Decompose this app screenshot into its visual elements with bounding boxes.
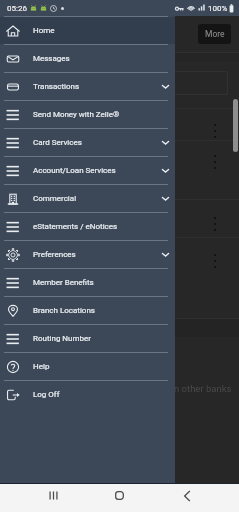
button[interactable]: Send Money with Zelle® bbox=[0, 101, 175, 128]
staticText: Routing Number bbox=[33, 334, 91, 343]
button[interactable]: Home bbox=[0, 17, 175, 44]
button[interactable]: More options bbox=[214, 155, 216, 169]
staticText: Branch Locations bbox=[33, 306, 95, 315]
button[interactable]: More options bbox=[214, 217, 216, 231]
button[interactable]: Recent apps bbox=[40, 482, 67, 509]
staticText: More bbox=[205, 29, 225, 39]
staticText: Member Benefits bbox=[33, 278, 94, 287]
staticText: 100% bbox=[208, 4, 228, 13]
button[interactable]: Transactions bbox=[0, 73, 175, 100]
button[interactable]: eStatements / eNotices bbox=[0, 213, 175, 240]
button[interactable]: Back bbox=[173, 482, 200, 509]
button[interactable]: Messages bbox=[0, 45, 175, 72]
button[interactable]: Commercial bbox=[0, 185, 175, 212]
button[interactable]: Routing Number bbox=[0, 325, 175, 352]
button[interactable]: Card Services bbox=[0, 129, 175, 156]
staticText: Commercial bbox=[33, 194, 77, 203]
staticText: Preferences bbox=[33, 250, 76, 259]
button[interactable]: Account/Loan Services bbox=[0, 157, 175, 184]
button[interactable]: More options bbox=[214, 254, 216, 268]
button[interactable]: More options bbox=[214, 124, 216, 138]
button[interactable]: Home bbox=[106, 482, 133, 509]
staticText: Transactions bbox=[33, 82, 80, 91]
staticText: Log Off bbox=[33, 390, 60, 399]
staticText: Home bbox=[33, 26, 55, 35]
staticText: Help bbox=[33, 362, 50, 371]
staticText: eStatements / eNotices bbox=[33, 222, 118, 231]
button[interactable]: Member Benefits bbox=[0, 269, 175, 296]
staticText: 05:26 bbox=[7, 4, 27, 13]
button[interactable]: Log Off bbox=[0, 381, 175, 408]
button[interactable]: Branch Locations bbox=[0, 297, 175, 324]
button[interactable]: Preferences bbox=[0, 241, 175, 268]
staticText: n other banks bbox=[174, 383, 232, 394]
button[interactable]: More bbox=[198, 24, 231, 44]
staticText: Card Services bbox=[33, 138, 82, 147]
staticText: Messages bbox=[33, 54, 70, 63]
button[interactable]: Help bbox=[0, 353, 175, 380]
staticText: Account/Loan Services bbox=[33, 166, 116, 175]
staticText: Send Money with Zelle® bbox=[33, 110, 120, 119]
